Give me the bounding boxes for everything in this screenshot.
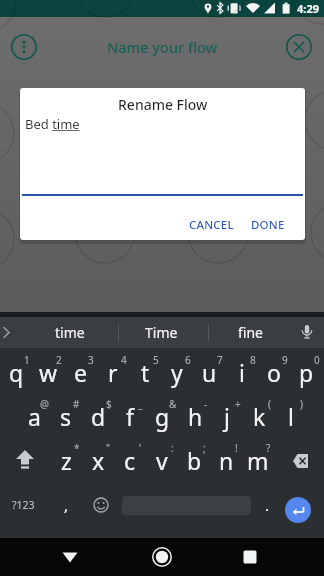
staticText: ; bbox=[203, 441, 206, 454]
button[interactable]: DONE bbox=[247, 211, 289, 239]
button[interactable] bbox=[147, 542, 177, 572]
button[interactable]: c bbox=[113, 439, 147, 481]
staticText: o bbox=[267, 357, 281, 388]
button[interactable]: v bbox=[145, 439, 179, 481]
staticText: 4:29 bbox=[297, 1, 319, 16]
staticText: $ bbox=[106, 397, 112, 410]
button[interactable]: j bbox=[210, 395, 244, 437]
staticText: e bbox=[74, 357, 87, 388]
staticText: 5 bbox=[153, 353, 159, 366]
staticText: g bbox=[155, 401, 170, 432]
staticText: . bbox=[265, 495, 270, 515]
staticText: Bed time bbox=[25, 115, 80, 133]
staticText: b bbox=[187, 445, 202, 476]
staticText: 2 bbox=[56, 353, 62, 366]
staticText: m bbox=[247, 445, 269, 476]
button[interactable]: f bbox=[113, 395, 147, 437]
staticText: u bbox=[202, 357, 217, 388]
button[interactable]: p bbox=[289, 351, 323, 393]
staticText: a bbox=[28, 401, 41, 432]
staticText: t bbox=[141, 357, 150, 388]
button[interactable]: , bbox=[56, 489, 76, 521]
staticText: * bbox=[74, 441, 80, 454]
button[interactable] bbox=[8, 444, 42, 478]
button[interactable]: q bbox=[0, 351, 33, 393]
staticText: " bbox=[106, 441, 111, 454]
button[interactable]: m bbox=[241, 439, 275, 481]
button[interactable]: l bbox=[274, 395, 308, 437]
staticText: l bbox=[288, 401, 294, 432]
staticText: 6 bbox=[185, 353, 191, 366]
staticText: DONE bbox=[251, 217, 285, 233]
button[interactable]: n bbox=[209, 439, 243, 481]
staticText: ' bbox=[139, 441, 142, 454]
staticText: n bbox=[219, 445, 234, 476]
button[interactable] bbox=[235, 542, 265, 572]
button[interactable]: CANCEL bbox=[183, 211, 240, 239]
button[interactable]: Time bbox=[131, 317, 191, 348]
staticText: Name your flow bbox=[107, 37, 218, 57]
staticText: q bbox=[9, 357, 24, 388]
button[interactable]: h bbox=[178, 395, 212, 437]
staticText: 8 bbox=[250, 353, 256, 366]
staticText: Time bbox=[145, 323, 178, 342]
staticText: time bbox=[55, 323, 85, 342]
button[interactable]: Bed time bbox=[25, 115, 225, 133]
staticText: CANCEL bbox=[189, 217, 234, 233]
button[interactable]: d bbox=[81, 395, 115, 437]
staticText: fine bbox=[238, 323, 263, 342]
staticText: d bbox=[91, 401, 106, 432]
staticText: w bbox=[39, 357, 58, 388]
staticText: x bbox=[92, 445, 105, 476]
staticText: ?123 bbox=[12, 498, 35, 512]
staticText: & bbox=[169, 397, 177, 410]
button[interactable]: g bbox=[145, 395, 179, 437]
staticText: j bbox=[224, 401, 230, 432]
button[interactable] bbox=[55, 542, 85, 572]
button[interactable]: k bbox=[242, 395, 276, 437]
button[interactable]: x bbox=[81, 439, 115, 481]
staticText: 4 bbox=[121, 353, 127, 366]
button[interactable]: o bbox=[257, 351, 291, 393]
button[interactable]: b bbox=[177, 439, 211, 481]
button[interactable]: time bbox=[40, 317, 100, 348]
button[interactable]: ?123 bbox=[6, 489, 40, 521]
button[interactable]: r bbox=[96, 351, 130, 393]
staticText: # bbox=[73, 397, 80, 410]
staticText: 3 bbox=[88, 353, 94, 366]
staticText: ? bbox=[266, 441, 271, 454]
button[interactable]: u bbox=[192, 351, 226, 393]
button[interactable] bbox=[91, 489, 111, 521]
staticText: y bbox=[171, 357, 183, 388]
button[interactable] bbox=[11, 34, 37, 60]
staticText: Rename Flow bbox=[118, 95, 208, 113]
button[interactable]: e bbox=[63, 351, 97, 393]
button[interactable]: . bbox=[257, 489, 277, 521]
staticText: p bbox=[299, 357, 314, 388]
staticText: s bbox=[60, 401, 72, 432]
button[interactable]: a bbox=[17, 395, 51, 437]
button[interactable]: z bbox=[49, 439, 83, 481]
staticText: ( bbox=[268, 397, 271, 410]
staticText: _ bbox=[138, 397, 143, 410]
button[interactable]: t bbox=[128, 351, 162, 393]
staticText: ! bbox=[235, 441, 238, 454]
staticText: f bbox=[126, 401, 134, 432]
staticText: @ bbox=[40, 397, 49, 410]
button[interactable]: i bbox=[225, 351, 259, 393]
button[interactable] bbox=[282, 444, 316, 478]
button[interactable]: y bbox=[160, 351, 194, 393]
button[interactable] bbox=[285, 497, 311, 523]
button[interactable]: fine bbox=[220, 317, 280, 348]
button[interactable]: s bbox=[49, 395, 83, 437]
staticText: ) bbox=[300, 397, 303, 410]
staticText: h bbox=[188, 401, 203, 432]
button[interactable]: w bbox=[31, 351, 65, 393]
button[interactable] bbox=[286, 34, 312, 60]
staticText: z bbox=[61, 445, 72, 476]
staticText: c bbox=[124, 445, 136, 476]
staticText: + bbox=[235, 397, 241, 410]
staticText: v bbox=[156, 445, 168, 476]
staticText: : bbox=[171, 441, 174, 454]
